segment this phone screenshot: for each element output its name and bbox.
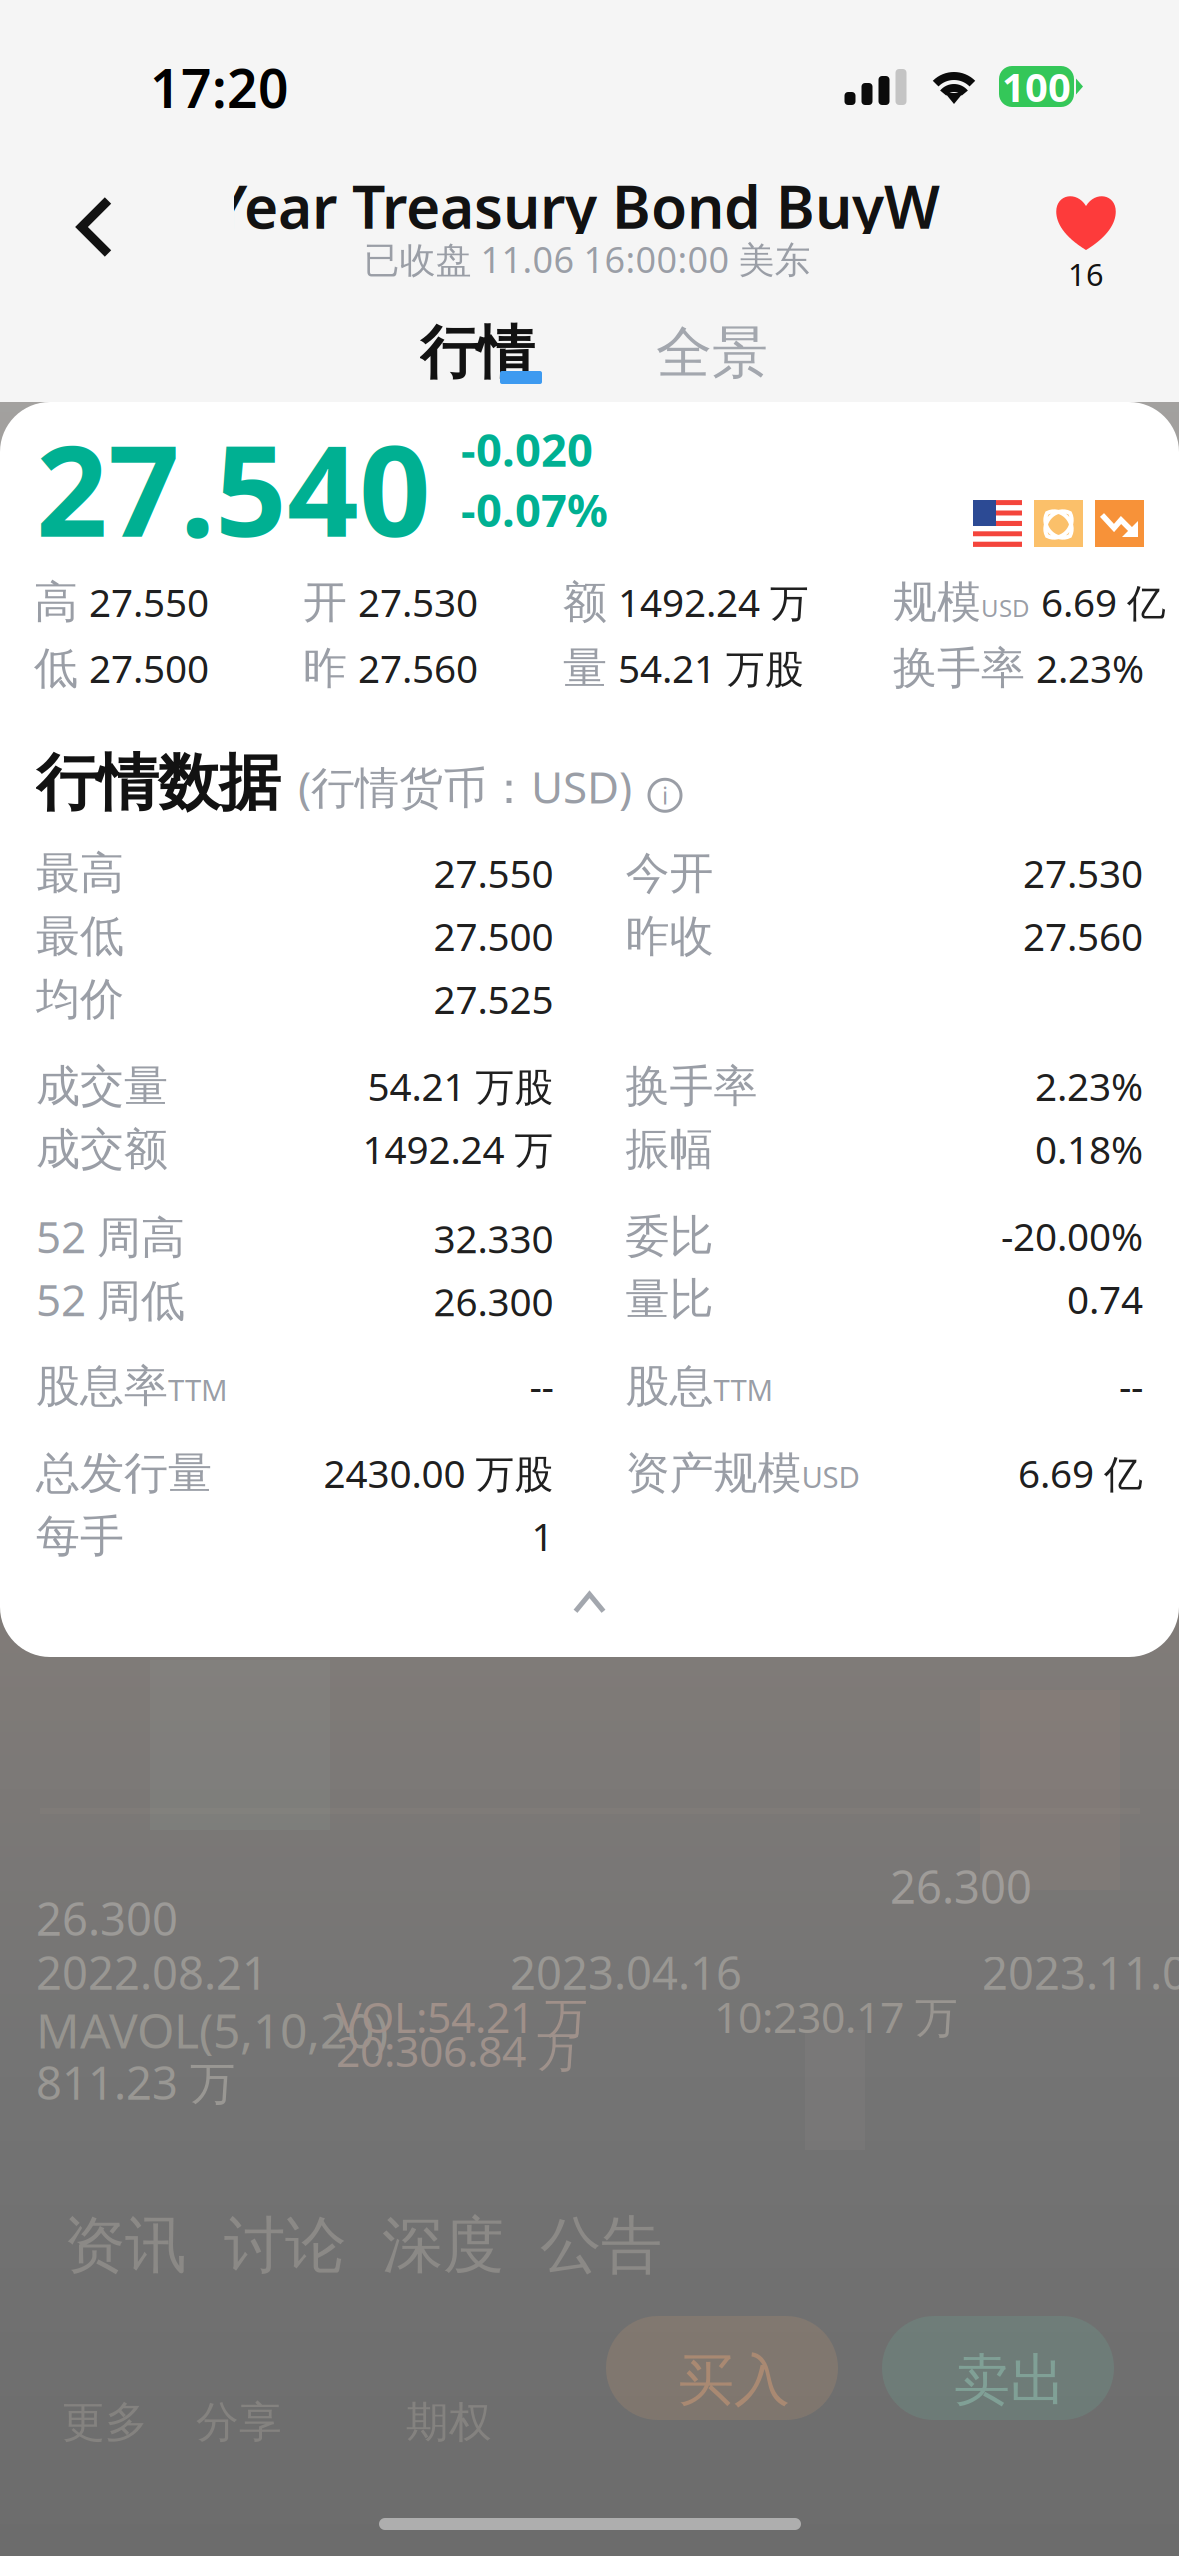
staticText: 今开 [625, 846, 713, 900]
staticText: 27.500 [433, 910, 553, 961]
staticText: 分享 [196, 2396, 282, 2448]
button[interactable]: Back [40, 172, 150, 282]
staticText: 深度 [382, 2208, 504, 2283]
staticText: 资产规模 [625, 1446, 801, 1500]
staticText: 54.21 万股 [618, 642, 804, 694]
staticText: 昨 [303, 641, 347, 695]
staticText: 量比 [625, 1272, 713, 1326]
staticText: 1492.24 万 [618, 576, 809, 628]
staticText: 27.530 [358, 576, 478, 628]
staticText: USD [981, 592, 1030, 624]
staticText: 振幅 [625, 1122, 713, 1176]
staticText: TTM [713, 1370, 773, 1409]
staticText: 更多 [62, 2396, 148, 2448]
staticText: 额 [563, 575, 607, 629]
staticText: 54.21 万股 [367, 1060, 553, 1111]
staticText: 27.525 [433, 973, 553, 1024]
staticText: 6.69 亿 [1018, 1447, 1143, 1498]
staticText: 讨论 [224, 2208, 346, 2283]
staticText: 开 [303, 575, 347, 629]
staticText: -20.00% [1001, 1210, 1143, 1261]
staticText: 100 [1002, 60, 1071, 113]
staticText: 行情 [420, 318, 534, 388]
staticText: 成交量 [36, 1059, 168, 1113]
staticText: VOL:54.21 万 [336, 1988, 588, 2045]
staticText: 27.540 [36, 405, 431, 571]
staticText: 已收盘 11.06 16:00:00 美东 [363, 235, 810, 283]
staticText: 20:306.84 万 [336, 2022, 580, 2079]
staticText: 27.560 [1023, 910, 1143, 961]
staticText: 2023.11.06 [982, 1942, 1179, 2002]
staticText: 27.550 [89, 576, 209, 628]
staticText: 换手率 [625, 1059, 757, 1113]
staticText: (行情货币：USD) [298, 757, 632, 816]
staticText: 32.330 [433, 1213, 553, 1264]
staticText: 卖出 [954, 2346, 1066, 2415]
staticText: 0.18% [1035, 1123, 1143, 1174]
staticText: 规模 [893, 575, 981, 629]
staticText: 买入 [678, 2346, 790, 2415]
staticText: 26.300 [433, 1276, 553, 1327]
button[interactable]: Collapse details [0, 1568, 1179, 1638]
staticText: 换手率 [893, 641, 1025, 695]
staticText: 行情数据 [36, 745, 280, 821]
staticText: 委比 [625, 1209, 713, 1263]
staticText: 股息 [625, 1359, 713, 1413]
staticText: 每手 [36, 1509, 124, 1563]
staticText: 公告 [540, 2208, 662, 2283]
button[interactable]: Watchlist 16 [1026, 193, 1146, 297]
staticText: TTM [168, 1370, 228, 1409]
staticText: 2023.04.16 [510, 1942, 742, 2002]
staticText: 1 [531, 1510, 553, 1561]
staticText: 均价 [36, 972, 124, 1026]
staticText: 27.550 [433, 847, 553, 898]
staticText: -- [529, 1360, 553, 1411]
staticText: 全景 [656, 319, 768, 387]
staticText: 低 [34, 641, 78, 695]
staticText: 10:230.17 万 [714, 1988, 958, 2045]
staticText: 0.74 [1067, 1273, 1143, 1324]
staticText: 811.23 万 [36, 2052, 235, 2112]
staticText: 股息率 [36, 1359, 168, 1413]
staticText: 资讯 [64, 2208, 186, 2283]
staticText: 27.560 [358, 642, 478, 694]
staticText: 量 [563, 641, 607, 695]
staticText: -0.020 [461, 419, 593, 479]
staticText: 27.530 [1023, 847, 1143, 898]
staticText: 16 [1068, 254, 1104, 294]
staticText: 52 周高 [36, 1207, 185, 1265]
staticText: 52 周低 [36, 1270, 185, 1328]
staticText: -0.07% [461, 479, 608, 539]
staticText: 17:20 [150, 52, 289, 123]
staticText: 2.23% [1035, 1060, 1143, 1111]
staticText: 总发行量 [36, 1446, 212, 1500]
staticText: 1492.24 万 [362, 1123, 553, 1174]
staticText: i [662, 779, 668, 811]
button[interactable]: 全景 [656, 313, 806, 393]
staticText: 2.23% [1036, 642, 1144, 694]
staticText: 成交额 [36, 1122, 168, 1176]
staticText: 26.300 [890, 1856, 1032, 1916]
staticText: 26.300 [36, 1888, 178, 1948]
staticText: 昨收 [625, 909, 713, 963]
staticText: 最低 [36, 909, 124, 963]
staticText: 高 [34, 575, 78, 629]
button[interactable]: 行情 [420, 313, 570, 393]
staticText: 2022.08.21 [36, 1942, 268, 2002]
staticText: USD [801, 1457, 859, 1496]
staticText: -- [1119, 1360, 1143, 1411]
staticText: MAVOL(5,10,20) [36, 1998, 388, 2062]
staticText: 期权 [406, 2396, 492, 2448]
staticText: 2430.00 万股 [323, 1447, 553, 1498]
staticText: 6.69 亿 [1041, 576, 1166, 628]
staticText: iShares 20+ Year Treasury Bond BuyW [0, 167, 940, 245]
staticText: 27.500 [89, 642, 209, 694]
staticText: 最高 [36, 846, 124, 900]
